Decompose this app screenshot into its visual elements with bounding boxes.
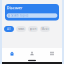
staticText: All [7, 27, 11, 31]
staticText: Search topics [11, 14, 28, 17]
button[interactable]: All [4, 26, 14, 32]
staticText: Sport [29, 27, 36, 31]
button[interactable]: News [16, 26, 26, 32]
button[interactable]: Sport [28, 26, 38, 32]
staticText: News [18, 27, 24, 31]
button[interactable]: Profile [22, 48, 42, 59]
button[interactable]: Home [2, 48, 22, 59]
button[interactable]: Music [40, 26, 50, 32]
button[interactable]: Library [42, 48, 62, 59]
staticText: Music [41, 27, 48, 31]
staticText: Discover [7, 5, 23, 10]
